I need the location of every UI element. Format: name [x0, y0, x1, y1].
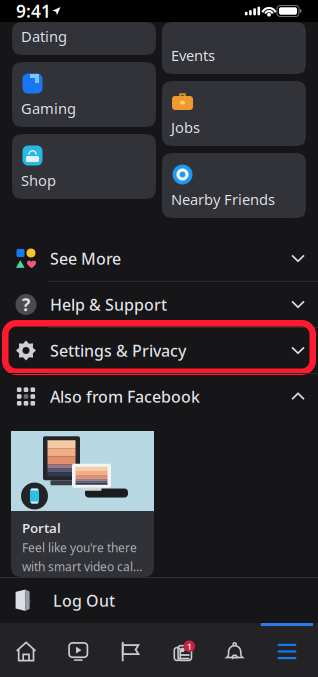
staticText: Nearby Friends — [171, 189, 275, 209]
staticText: Log Out — [53, 590, 115, 611]
staticText: Portal — [22, 519, 61, 537]
staticText: Dating — [21, 26, 67, 46]
button[interactable]: Portal — [11, 431, 154, 577]
staticText: Feel like you're there — [22, 540, 137, 556]
button[interactable]: Pages — [104, 623, 156, 677]
button[interactable]: Events — [162, 22, 306, 74]
button[interactable]: Video — [52, 623, 104, 677]
button[interactable]: Dating — [12, 22, 156, 55]
button[interactable]: News — [156, 623, 209, 677]
button[interactable]: Nearby Friends — [162, 153, 306, 218]
staticText: Shop — [21, 170, 56, 190]
button[interactable]: Also from Facebook — [0, 374, 318, 419]
button[interactable]: Shop — [12, 134, 156, 199]
staticText: Settings & Privacy — [50, 340, 186, 361]
button[interactable]: Home — [0, 623, 52, 677]
staticText: ? — [22, 293, 30, 316]
button[interactable]: Gaming — [12, 62, 156, 127]
staticText: Events — [171, 45, 215, 65]
button[interactable]: Settings & Privacy — [0, 328, 318, 373]
button[interactable]: ? — [0, 282, 318, 327]
staticText: Gaming — [21, 98, 76, 118]
staticText: Help & Support — [50, 294, 167, 315]
button[interactable]: Menu — [261, 623, 313, 677]
button[interactable]: Notifications — [209, 623, 261, 677]
staticText: Jobs — [171, 117, 200, 137]
staticText: with smart video calli... — [22, 559, 143, 574]
staticText: 1 — [187, 640, 192, 652]
button[interactable]: Log Out — [0, 578, 318, 623]
button[interactable]: See More — [0, 236, 318, 281]
button[interactable]: Jobs — [162, 81, 306, 146]
staticText: See More — [50, 248, 121, 269]
staticText: 9:41 — [16, 0, 51, 22]
staticText: Also from Facebook — [50, 386, 200, 407]
